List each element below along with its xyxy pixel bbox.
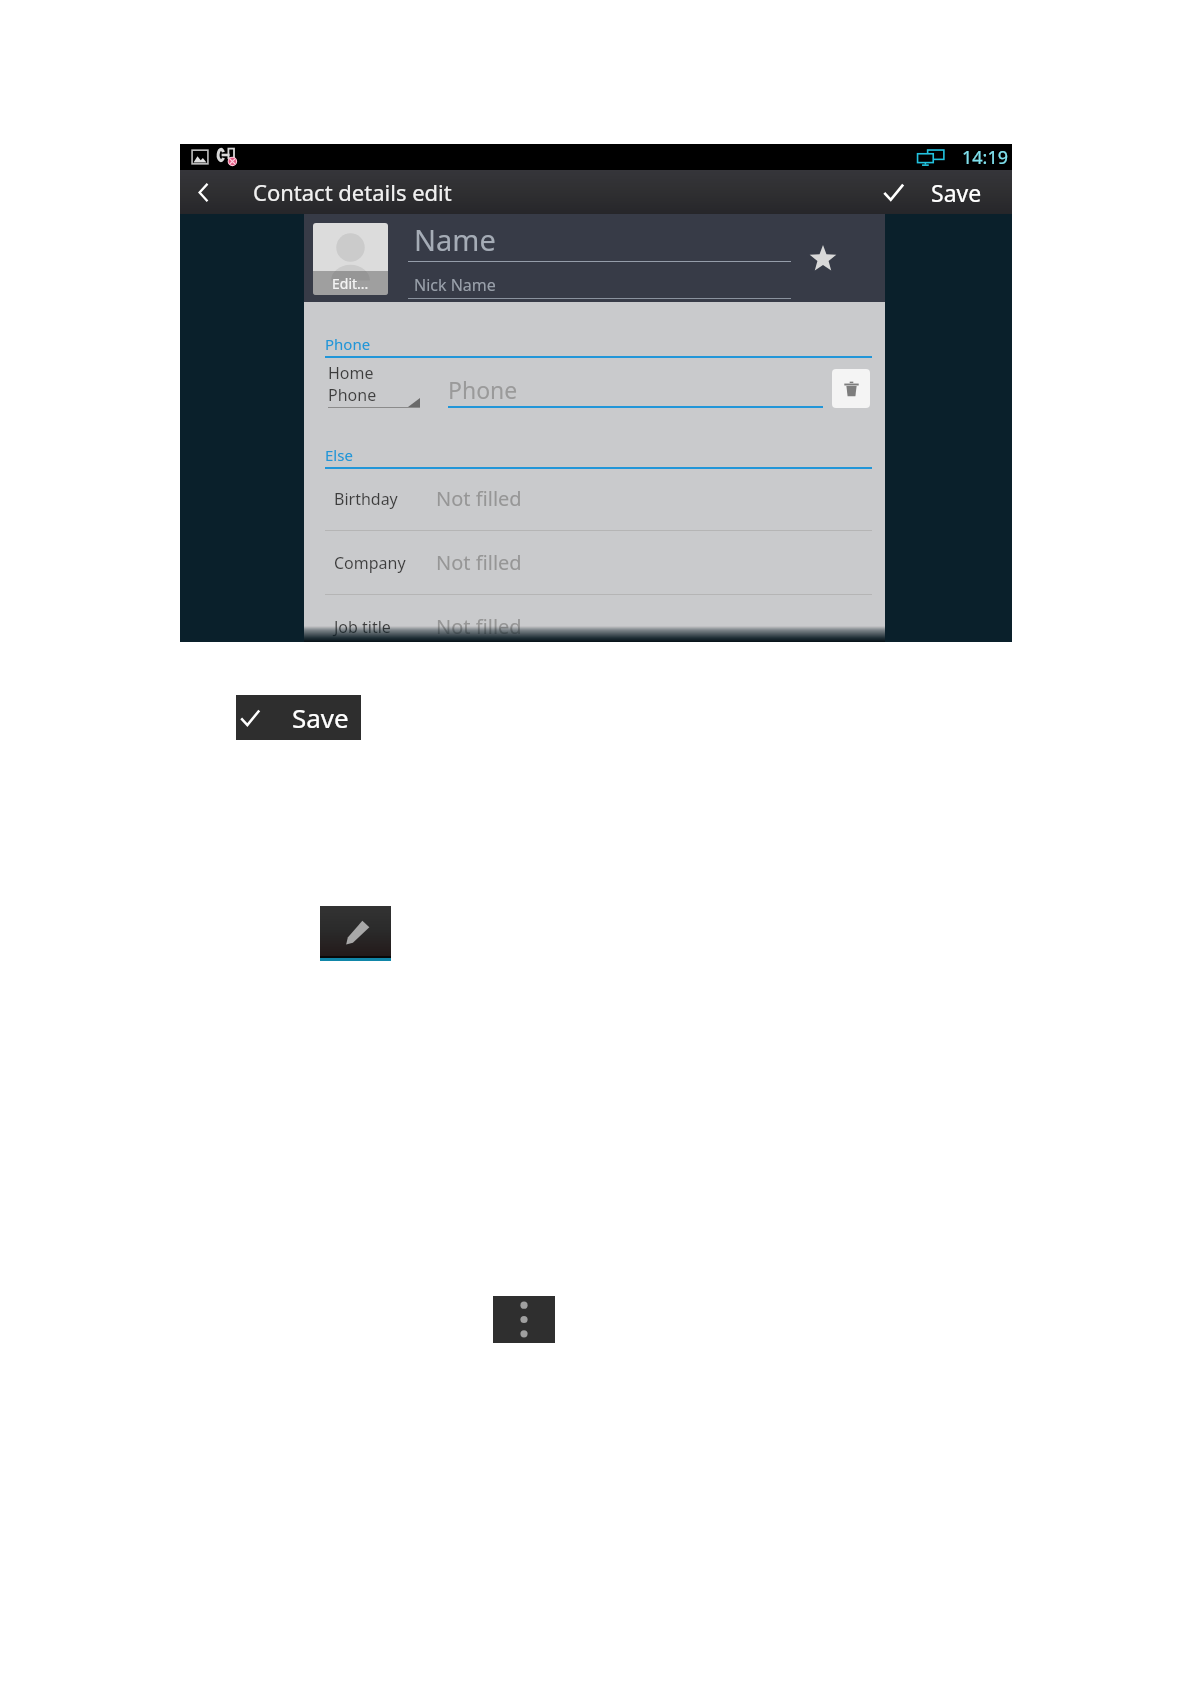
button[interactable]: Back — [180, 170, 226, 214]
button[interactable]: Home — [328, 362, 420, 408]
staticText: 14:19 — [962, 145, 1009, 170]
staticText: Name — [414, 220, 496, 259]
button[interactable]: Birthday — [304, 467, 885, 530]
staticText: Birthday — [334, 488, 398, 510]
staticText: Else — [325, 445, 353, 465]
button[interactable]: Edit — [320, 906, 391, 961]
staticText: Save — [292, 700, 349, 735]
staticText: Home — [328, 362, 374, 384]
button[interactable]: Edit photo — [313, 223, 388, 295]
button[interactable]: Save — [872, 170, 992, 214]
staticText: Phone — [325, 334, 371, 354]
staticText: Not filled — [436, 485, 522, 512]
button[interactable]: Delete — [832, 369, 870, 408]
button[interactable]: Save — [236, 695, 361, 740]
staticText: Job title — [334, 616, 391, 638]
staticText: Phone — [328, 384, 377, 406]
button[interactable]: Job title — [304, 595, 885, 642]
staticText: Company — [334, 552, 406, 574]
staticText: Save — [931, 177, 982, 208]
button[interactable]: Company — [304, 531, 885, 594]
staticText: Edit... — [332, 274, 369, 293]
button[interactable]: More options — [493, 1296, 555, 1343]
staticText: Not filled — [436, 549, 522, 576]
button[interactable]: Favourite — [796, 231, 850, 285]
staticText: Nick Name — [414, 274, 496, 296]
staticText: Not filled — [436, 613, 522, 640]
staticText: Phone — [448, 374, 518, 405]
staticText: Contact details edit — [253, 177, 452, 207]
